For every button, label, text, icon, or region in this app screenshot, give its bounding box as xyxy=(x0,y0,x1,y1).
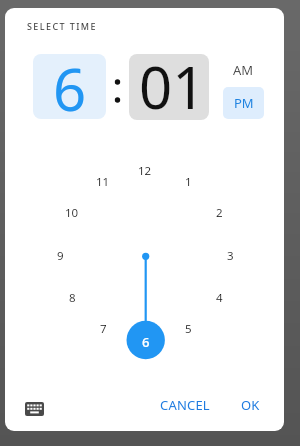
staticText: 1 xyxy=(185,174,192,190)
button[interactable]: OK xyxy=(234,393,266,417)
button[interactable]: PM xyxy=(223,87,264,119)
button[interactable]: CANCEL xyxy=(155,393,215,417)
staticText: AM xyxy=(233,61,254,79)
staticText: 3 xyxy=(227,248,234,264)
staticText: 5 xyxy=(185,321,192,337)
staticText: 01 xyxy=(139,54,206,113)
button[interactable]: 6 xyxy=(33,54,106,119)
staticText: OK xyxy=(241,396,260,414)
staticText: SELECT TIME xyxy=(27,20,97,32)
staticText: 8 xyxy=(69,290,76,306)
button[interactable]: 01 xyxy=(129,54,209,120)
staticText: 10 xyxy=(65,205,79,221)
staticText: 4 xyxy=(216,290,223,306)
button[interactable]: AM xyxy=(223,55,264,84)
button[interactable]: 6 xyxy=(131,328,161,356)
staticText: 9 xyxy=(57,248,64,264)
staticText: 6 xyxy=(142,333,150,351)
staticText: PM xyxy=(234,94,254,112)
staticText: 2 xyxy=(216,205,223,221)
staticText: 6 xyxy=(53,54,87,114)
staticText: 12 xyxy=(138,163,152,179)
staticText: 11 xyxy=(96,174,110,190)
staticText: 7 xyxy=(100,321,107,337)
button[interactable] xyxy=(20,398,48,420)
staticText: CANCEL xyxy=(160,396,210,414)
